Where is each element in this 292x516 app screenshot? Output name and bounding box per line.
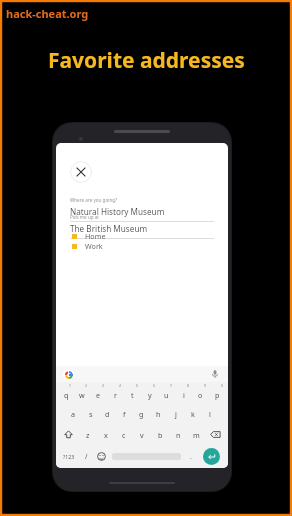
button[interactable]: / bbox=[79, 445, 93, 467]
staticText: a bbox=[71, 409, 76, 419]
staticText: 0 bbox=[221, 383, 223, 388]
staticText: f bbox=[123, 409, 126, 419]
button[interactable]: 1 bbox=[58, 382, 74, 403]
staticText: 6 bbox=[153, 383, 155, 388]
staticText: n bbox=[176, 430, 181, 440]
staticText: Work bbox=[85, 241, 103, 251]
button[interactable]: Google bbox=[63, 369, 74, 380]
button[interactable]: 5 bbox=[124, 382, 141, 403]
staticText: 8 bbox=[187, 383, 189, 388]
staticText: 7 bbox=[170, 383, 172, 388]
staticText: d bbox=[105, 409, 110, 419]
button[interactable]: 4 bbox=[107, 382, 124, 403]
staticText: Natural History Museum bbox=[70, 206, 165, 217]
staticText: p bbox=[215, 390, 220, 400]
staticText: 1 bbox=[69, 383, 71, 388]
button[interactable]: c bbox=[115, 424, 133, 445]
staticText: m bbox=[193, 430, 200, 440]
staticText: j bbox=[175, 409, 177, 419]
button[interactable]: k bbox=[184, 403, 201, 424]
button[interactable]: 8 bbox=[175, 382, 192, 403]
button[interactable]: 0 bbox=[209, 382, 226, 403]
staticText: z bbox=[86, 430, 90, 440]
button[interactable]: v bbox=[133, 424, 151, 445]
staticText: Home bbox=[85, 231, 106, 241]
button[interactable]: g bbox=[133, 403, 150, 424]
staticText: 2 bbox=[85, 383, 87, 388]
staticText: g bbox=[139, 409, 144, 419]
button[interactable]: Pick me up at bbox=[70, 214, 214, 239]
staticText: 5 bbox=[136, 383, 138, 388]
staticText: h bbox=[156, 409, 161, 419]
button[interactable]: h bbox=[150, 403, 167, 424]
button[interactable]: 6 bbox=[141, 382, 158, 403]
staticText: w bbox=[79, 390, 85, 400]
staticText: . bbox=[190, 452, 192, 461]
button[interactable]: Close bbox=[70, 161, 92, 183]
staticText: y bbox=[148, 390, 152, 400]
staticText: Pick me up at bbox=[70, 214, 99, 220]
staticText: q bbox=[64, 390, 69, 400]
button[interactable]: Enter bbox=[198, 445, 225, 467]
staticText: i bbox=[183, 390, 185, 400]
button[interactable]: ?123 bbox=[59, 445, 79, 467]
button[interactable]: Shift bbox=[58, 424, 79, 445]
button[interactable]: m bbox=[187, 424, 205, 445]
button[interactable]: l bbox=[201, 403, 218, 424]
staticText: l bbox=[209, 409, 211, 419]
staticText: e bbox=[96, 390, 101, 400]
staticText: s bbox=[89, 409, 93, 419]
staticText: The British Museum bbox=[70, 223, 148, 234]
button[interactable]: Backspace bbox=[205, 424, 226, 445]
button[interactable]: Where are you going? bbox=[70, 197, 214, 222]
button[interactable]: 3 bbox=[90, 382, 107, 403]
button[interactable]: f bbox=[116, 403, 133, 424]
staticText: u bbox=[164, 390, 169, 400]
staticText: / bbox=[85, 452, 88, 461]
button[interactable]: b bbox=[151, 424, 169, 445]
button[interactable]: Work bbox=[56, 239, 228, 253]
staticText: r bbox=[114, 390, 117, 400]
button[interactable]: d bbox=[99, 403, 116, 424]
staticText: Favorite addresses bbox=[48, 46, 245, 75]
staticText: hack-cheat.org bbox=[6, 6, 89, 21]
button[interactable]: Home bbox=[56, 229, 228, 243]
staticText: k bbox=[191, 409, 195, 419]
staticText: x bbox=[104, 430, 108, 440]
button[interactable]: s bbox=[82, 403, 99, 424]
staticText: Where are you going? bbox=[70, 197, 118, 203]
button[interactable]: Emoji bbox=[93, 445, 109, 467]
staticText: 9 bbox=[204, 383, 206, 388]
staticText: c bbox=[122, 430, 126, 440]
staticText: t bbox=[131, 390, 134, 400]
button[interactable]: n bbox=[169, 424, 187, 445]
button[interactable]: j bbox=[167, 403, 184, 424]
staticText: ?123 bbox=[63, 453, 75, 460]
staticText: o bbox=[198, 390, 203, 400]
button[interactable]: . bbox=[184, 445, 198, 467]
button[interactable]: a bbox=[65, 403, 82, 424]
staticText: v bbox=[140, 430, 144, 440]
button[interactable]: 7 bbox=[158, 382, 175, 403]
button[interactable]: Voice input bbox=[209, 368, 221, 380]
staticText: b bbox=[158, 430, 163, 440]
button[interactable]: z bbox=[79, 424, 97, 445]
button[interactable]: x bbox=[97, 424, 115, 445]
staticText: 3 bbox=[102, 383, 104, 388]
button[interactable]: 9 bbox=[192, 382, 209, 403]
button[interactable]: 2 bbox=[74, 382, 90, 403]
staticText: 4 bbox=[119, 383, 121, 388]
